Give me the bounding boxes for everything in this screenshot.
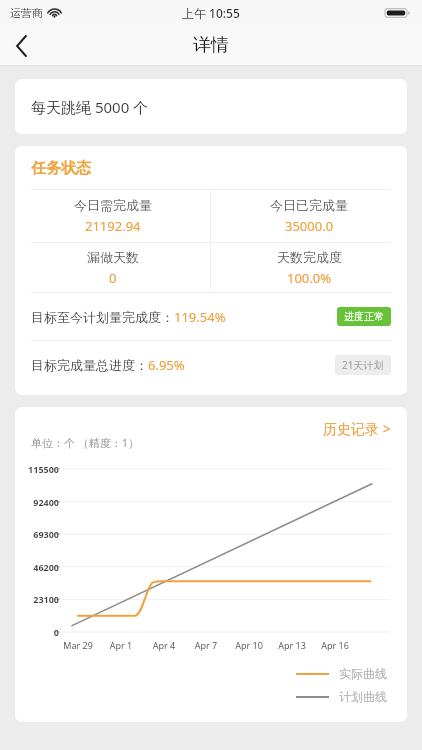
button[interactable]: 目标完成量总进度： [31, 341, 391, 388]
staticText: 69300 [17, 528, 59, 540]
staticText: 目标至今计划量完成度： [31, 309, 174, 325]
button[interactable]: 天数完成度 [211, 243, 407, 292]
staticText: 漏做天数 [87, 249, 139, 265]
button[interactable]: 今日已完成量 [211, 190, 407, 242]
staticText: 每天跳绳 5000 个 [31, 97, 149, 117]
staticText: 23100 [17, 593, 59, 605]
staticText: 今日需完成量 [74, 197, 152, 213]
staticText: Apr 16 [312, 639, 358, 651]
staticText: Apr 10 [226, 639, 272, 651]
button[interactable]: 今日需完成量 [15, 190, 210, 242]
staticText: 单位：个 （精度：1） [31, 435, 140, 450]
staticText: 今日已完成量 [270, 197, 348, 213]
staticText: Apr 13 [269, 639, 315, 651]
staticText: 100.0% [287, 269, 332, 287]
staticText: 35000.0 [285, 217, 334, 235]
staticText: 21天计划 [342, 358, 384, 372]
staticText: 进度正常 [344, 310, 384, 323]
button[interactable]: 目标至今计划量完成度： [31, 293, 391, 340]
staticText: Apr 1 [98, 639, 144, 651]
staticText: 115500 [17, 463, 59, 475]
staticText: 上午 10:55 [182, 5, 240, 21]
button[interactable]: 历史记录 > [317, 415, 397, 442]
staticText: 历史记录 > [323, 419, 391, 438]
button[interactable]: 每天跳绳 5000 个 [15, 79, 407, 134]
staticText: 92400 [17, 496, 59, 508]
staticText: 实际曲线 [339, 666, 387, 681]
staticText: 计划曲线 [339, 689, 387, 704]
staticText: Apr 4 [141, 639, 187, 651]
staticText: 运营商 [10, 6, 43, 20]
button[interactable]: 漏做天数 [15, 243, 210, 292]
staticText: 天数完成度 [277, 249, 342, 265]
staticText: 0 [17, 626, 59, 638]
staticText: 21192.94 [85, 217, 141, 235]
staticText: 119.54% [174, 308, 226, 326]
staticText: 0 [109, 269, 117, 287]
button[interactable]: Back [0, 25, 44, 66]
staticText: 详情 [193, 34, 229, 57]
staticText: 6.95% [148, 356, 185, 374]
staticText: Mar 29 [55, 639, 101, 651]
staticText: Apr 7 [183, 639, 229, 651]
staticText: 目标完成量总进度： [31, 357, 148, 373]
staticText: 46200 [17, 561, 59, 573]
staticText: 任务状态 [31, 159, 91, 178]
